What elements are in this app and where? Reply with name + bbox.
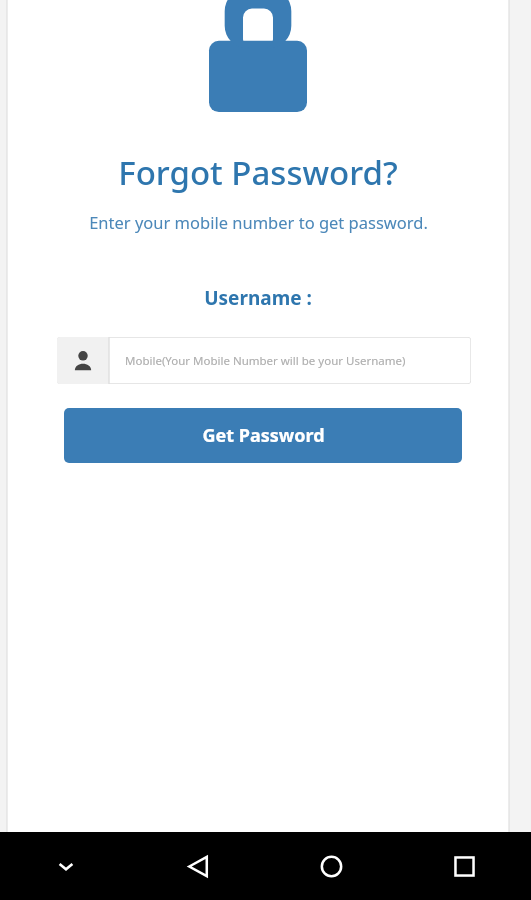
staticText: Username : [204, 285, 312, 311]
staticText: Enter your mobile number to get password… [89, 211, 428, 233]
button[interactable]: Mobile(Your Mobile Number will be your U… [57, 337, 471, 384]
button[interactable]: Get Password [64, 408, 462, 463]
staticText: Mobile(Your Mobile Number will be your U… [125, 353, 406, 369]
button[interactable]: Home [265, 832, 398, 900]
button[interactable]: Hide keyboard [0, 832, 132, 900]
button[interactable]: Back [132, 832, 265, 900]
staticText: Forgot Password? [118, 150, 398, 195]
button[interactable]: Recent apps [398, 832, 531, 900]
staticText: Get Password [202, 423, 325, 448]
